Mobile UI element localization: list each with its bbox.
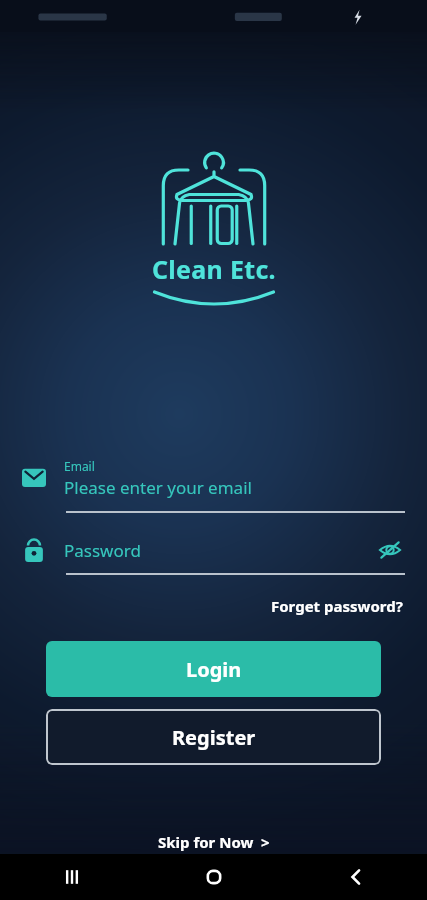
button[interactable]: Show password xyxy=(375,535,405,565)
button[interactable]: Register xyxy=(46,709,381,765)
staticText: Forget password? xyxy=(271,596,403,616)
button[interactable]: Back xyxy=(285,854,427,900)
staticText: Password xyxy=(64,539,375,562)
button[interactable]: Login xyxy=(46,641,381,697)
staticText: Email xyxy=(64,458,95,474)
button[interactable]: Home xyxy=(143,854,285,900)
button[interactable]: Recent apps xyxy=(0,854,143,900)
button[interactable]: Forget password? xyxy=(269,593,405,619)
staticText: > xyxy=(261,832,270,852)
staticText: Clean Etc. xyxy=(152,252,276,286)
staticText: Register xyxy=(172,724,256,751)
button[interactable]: Skip for Now xyxy=(150,828,278,856)
staticText: Login xyxy=(186,656,242,683)
staticText: Skip for Now xyxy=(158,832,254,852)
staticText: Please enter your email xyxy=(64,476,252,499)
